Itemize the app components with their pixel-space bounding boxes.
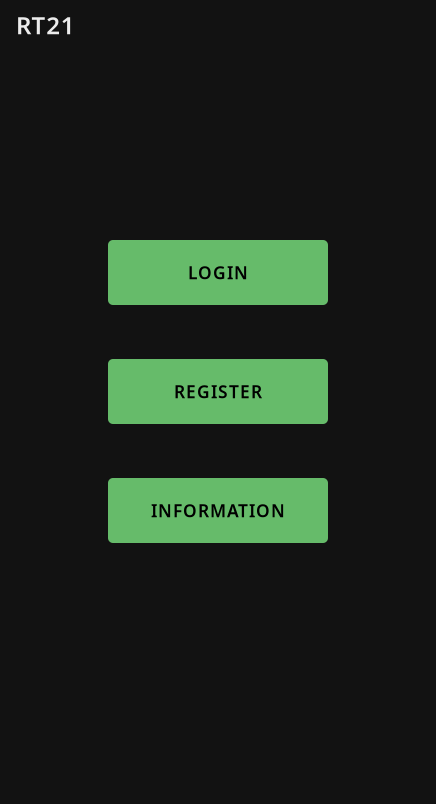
staticText: REGISTER	[174, 380, 262, 403]
staticText: INFORMATION	[151, 499, 285, 522]
button[interactable]: INFORMATION	[108, 478, 328, 543]
staticText: RT21	[16, 9, 75, 41]
button[interactable]: REGISTER	[108, 359, 328, 424]
button[interactable]: LOGIN	[108, 240, 328, 305]
staticText: LOGIN	[188, 261, 248, 284]
